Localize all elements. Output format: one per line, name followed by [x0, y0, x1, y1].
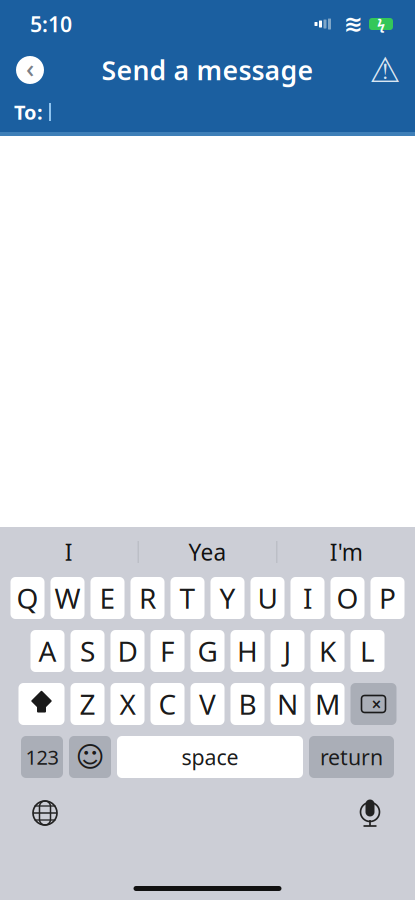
button[interactable]: M [310, 683, 344, 725]
staticText: I [303, 579, 312, 617]
staticText: To: [14, 99, 43, 125]
button[interactable]: I [0, 527, 138, 577]
button[interactable]: 123 [21, 736, 63, 778]
staticText: N [277, 685, 298, 723]
button[interactable]: F [150, 630, 184, 672]
button[interactable]: Yea [139, 527, 276, 577]
button[interactable]: U [250, 577, 284, 619]
button[interactable]: K [310, 630, 344, 672]
staticText: Yea [188, 537, 226, 567]
button[interactable]: Warning [363, 48, 407, 92]
button[interactable]: Shift [18, 683, 64, 725]
staticText: Q [16, 579, 38, 617]
staticText: I [65, 537, 73, 567]
button[interactable]: P [370, 577, 404, 619]
button[interactable]: A [30, 630, 64, 672]
staticText: ☺ [75, 741, 104, 773]
button[interactable]: C [150, 683, 184, 725]
button[interactable]: Q [10, 577, 44, 619]
button[interactable]: H [230, 630, 264, 672]
staticText: D [117, 632, 137, 670]
staticText: A [38, 632, 56, 670]
staticText: ‹ [26, 51, 34, 85]
button[interactable]: T [170, 577, 204, 619]
staticText: ≋ [344, 11, 363, 37]
staticText: return [320, 743, 383, 771]
button[interactable]: S [70, 630, 104, 672]
button[interactable]: O [330, 577, 364, 619]
staticText: Z [79, 685, 95, 723]
staticText: J [283, 632, 291, 670]
staticText: S [80, 632, 95, 670]
button[interactable]: Back [8, 48, 52, 92]
staticText: × [371, 692, 381, 715]
button[interactable]: X [110, 683, 144, 725]
staticText: H [237, 632, 258, 670]
staticText: ⚠ [369, 50, 400, 90]
button[interactable]: W [50, 577, 84, 619]
button[interactable]: I [290, 577, 324, 619]
staticText: Send a message [101, 52, 313, 88]
staticText: T [179, 579, 195, 617]
staticText: O [336, 579, 358, 617]
button[interactable]: N [270, 683, 304, 725]
staticText: 123 [25, 744, 58, 770]
button[interactable]: B [230, 683, 264, 725]
button[interactable]: return [309, 736, 394, 778]
staticText: K [319, 632, 336, 670]
staticText: U [257, 579, 277, 617]
button[interactable]: space [117, 736, 303, 778]
button[interactable]: Z [70, 683, 104, 725]
staticText: B [238, 685, 256, 723]
staticText: X [119, 685, 135, 723]
staticText: P [379, 579, 396, 617]
button[interactable]: I'm [277, 527, 415, 577]
staticText: Y [219, 579, 235, 617]
staticText: E [99, 579, 115, 617]
button[interactable]: E [90, 577, 124, 619]
staticText: V [199, 685, 216, 723]
button[interactable]: V [190, 683, 224, 725]
button[interactable]: G [190, 630, 224, 672]
staticText: R [139, 579, 156, 617]
button[interactable]: Dictate [347, 793, 393, 833]
button[interactable]: R [130, 577, 164, 619]
staticText: W [54, 579, 80, 617]
staticText: F [160, 632, 175, 670]
staticText: 5:10 [30, 10, 72, 38]
button[interactable]: Y [210, 577, 244, 619]
staticText: ϟ [377, 14, 385, 34]
button[interactable]: D [110, 630, 144, 672]
staticText: L [360, 632, 375, 670]
button[interactable]: Delete [350, 683, 396, 725]
button[interactable]: Change keyboard [22, 793, 68, 833]
staticText: C [158, 685, 176, 723]
staticText: I'm [330, 537, 363, 567]
staticText: M [315, 685, 340, 723]
button[interactable]: L [350, 630, 384, 672]
button[interactable]: Emoji [69, 736, 111, 778]
button[interactable]: J [270, 630, 304, 672]
staticText: G [197, 632, 217, 670]
staticText: space [181, 743, 238, 771]
